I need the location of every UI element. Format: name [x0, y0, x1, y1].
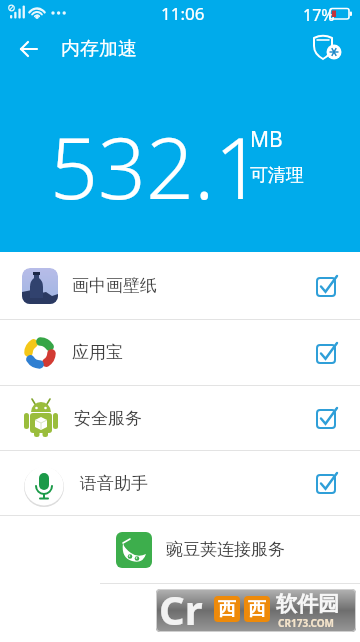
- button[interactable]: 安全服务: [0, 386, 360, 450]
- button[interactable]: 应用宝: [0, 320, 360, 385]
- button[interactable]: [316, 273, 342, 299]
- button[interactable]: [10, 36, 50, 62]
- staticText: 软件园: [276, 591, 339, 617]
- button[interactable]: 豌豆荚连接服务: [0, 516, 360, 583]
- staticText: 豌豆荚连接服务: [166, 539, 285, 560]
- button[interactable]: 语音助手: [0, 451, 360, 515]
- staticText: 532.1: [50, 109, 263, 223]
- staticText: 内存加速: [61, 37, 137, 61]
- staticText: 画中画壁纸: [72, 275, 157, 296]
- staticText: CR173.COM: [278, 616, 335, 630]
- staticText: MB: [250, 125, 283, 154]
- button[interactable]: [316, 405, 342, 431]
- button[interactable]: [310, 32, 346, 64]
- staticText: Cr: [159, 589, 203, 625]
- button[interactable]: [316, 340, 342, 366]
- button[interactable]: 画中画壁纸: [0, 252, 360, 319]
- staticText: 安全服务: [74, 408, 142, 429]
- staticText: 可清理: [250, 164, 304, 187]
- staticText: 17%: [303, 4, 335, 26]
- staticText: 语音助手: [80, 473, 148, 494]
- staticText: 11:06: [161, 2, 205, 25]
- staticText: 西: [248, 598, 266, 621]
- button[interactable]: [316, 470, 342, 496]
- staticText: 应用宝: [72, 342, 123, 363]
- staticText: 西: [218, 598, 236, 621]
